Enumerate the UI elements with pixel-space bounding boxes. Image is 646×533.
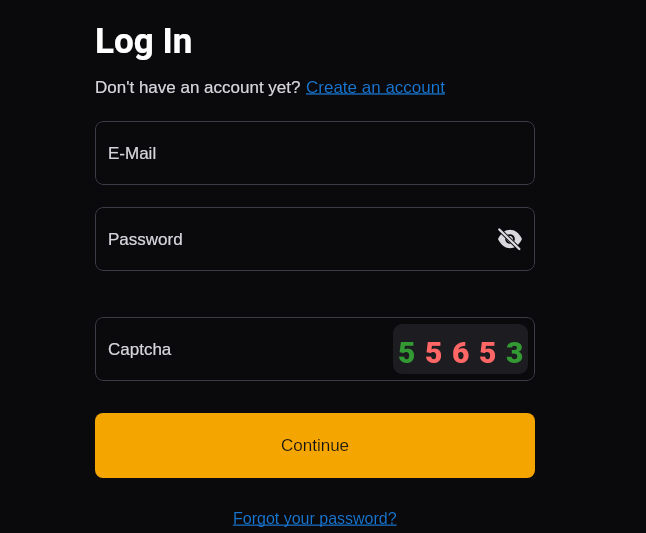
staticText: E-Mail (108, 144, 157, 163)
staticText: 5 (425, 335, 443, 370)
staticText: Log In (95, 21, 193, 62)
staticText: 5 (398, 335, 416, 370)
staticText: 6 (452, 335, 470, 370)
staticText: Password (108, 230, 183, 249)
button[interactable]: Password (95, 207, 535, 271)
staticText: Don't have an account yet? (95, 78, 306, 97)
staticText: Continue (281, 436, 350, 455)
button[interactable]: Show password (492, 221, 528, 257)
staticText: Captcha (108, 340, 172, 359)
button[interactable]: E-Mail (95, 121, 535, 185)
button[interactable]: Create an account (306, 78, 445, 97)
button[interactable]: Captcha code 5 5 6 5 3 (393, 324, 528, 374)
button[interactable]: Captcha (95, 317, 535, 381)
button[interactable]: Continue (95, 413, 535, 478)
staticText: 5 (479, 335, 497, 370)
staticText: 3 (506, 335, 524, 370)
button[interactable]: Forgot your password? (233, 510, 397, 528)
